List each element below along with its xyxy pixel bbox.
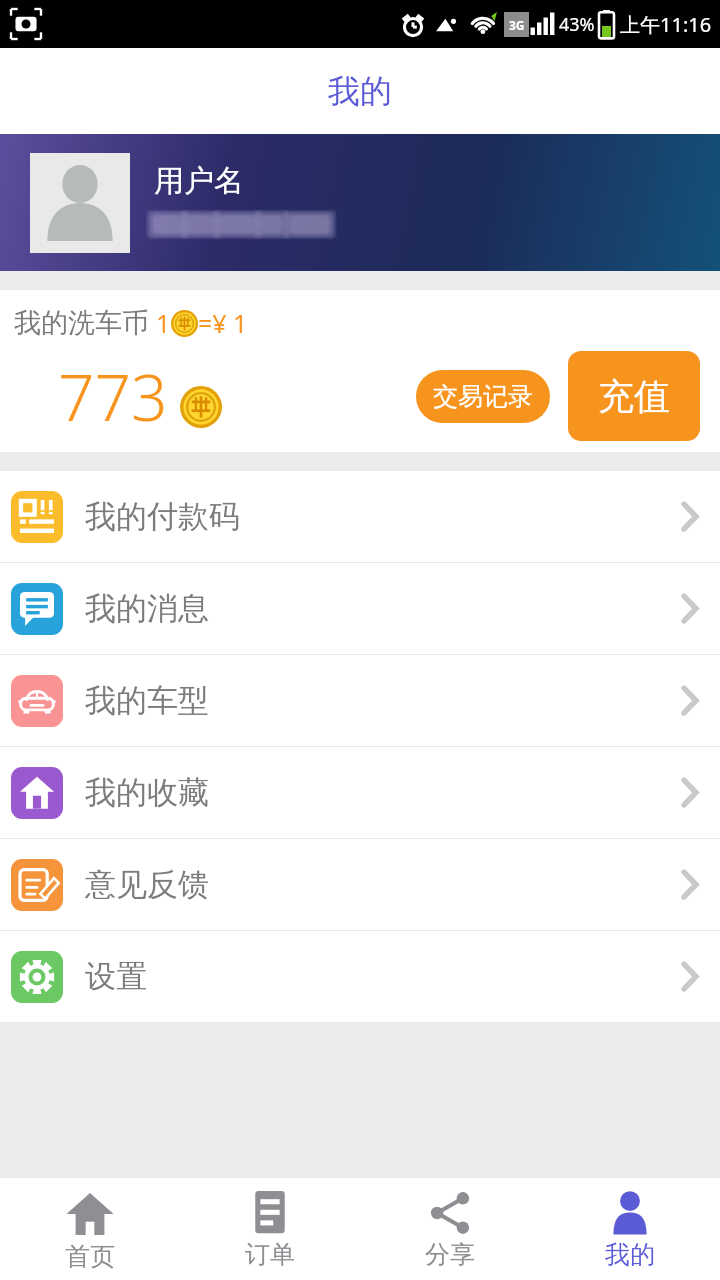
button[interactable]: 交易记录 (416, 370, 550, 423)
button[interactable]: 我的收藏 (0, 747, 720, 838)
staticText: 上午11:16 (620, 11, 712, 38)
staticText: 充值 (598, 374, 670, 419)
staticText: 我的 (605, 1239, 655, 1270)
staticText: 我的收藏 (85, 773, 209, 812)
staticText: 3G (509, 17, 525, 33)
button[interactable]: 我的付款码 (0, 471, 720, 562)
button[interactable]: 设置 (0, 931, 720, 1022)
staticText: =¥ 1 (198, 306, 248, 340)
staticText: 首页 (65, 1241, 115, 1272)
staticText: 用户名 (154, 162, 244, 200)
staticText: 43% (559, 12, 595, 37)
button[interactable]: 我的 (540, 1178, 720, 1280)
staticText: 773 (58, 353, 168, 440)
staticText: 交易记录 (433, 381, 533, 412)
button[interactable]: 首页 (0, 1178, 180, 1280)
staticText: 我的 (328, 71, 392, 111)
staticText: 我的付款码 (85, 497, 240, 536)
staticText: 我的车型 (85, 681, 209, 720)
button[interactable]: 我的车型 (0, 655, 720, 746)
button[interactable]: 订单 (180, 1178, 360, 1280)
staticText: 1 (156, 306, 171, 340)
other: Screenshot (10, 8, 42, 40)
button[interactable]: 我的消息 (0, 563, 720, 654)
staticText: 我的洗车币 (14, 306, 149, 340)
button[interactable]: 分享 (360, 1178, 540, 1280)
staticText: 意见反馈 (85, 865, 209, 904)
staticText: 分享 (425, 1239, 475, 1270)
staticText: 我的消息 (85, 589, 209, 628)
staticText: 设置 (85, 957, 147, 996)
button[interactable]: 充值 (568, 351, 700, 441)
button[interactable]: 意见反馈 (0, 839, 720, 930)
staticText: 订单 (245, 1239, 295, 1270)
button[interactable]: 用户名 (0, 134, 720, 271)
